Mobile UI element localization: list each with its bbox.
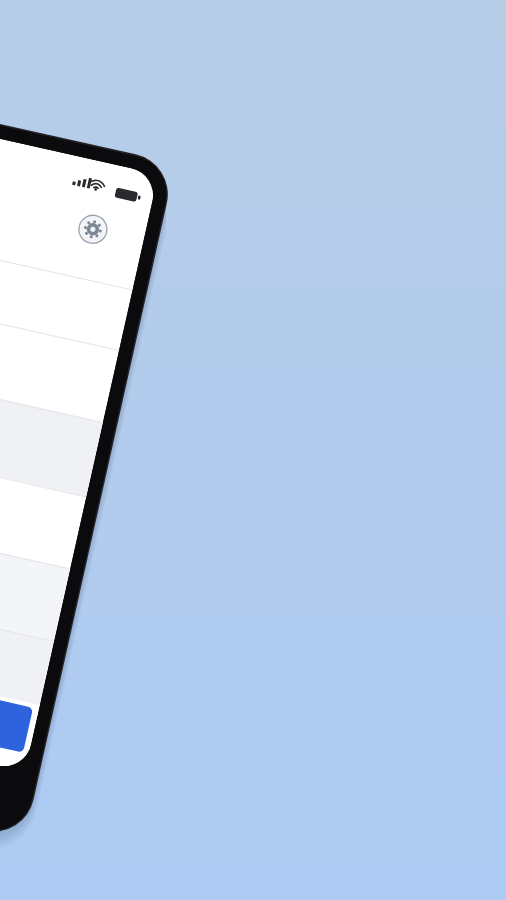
button[interactable]: Print preview on phone: [0, 0, 506, 900]
